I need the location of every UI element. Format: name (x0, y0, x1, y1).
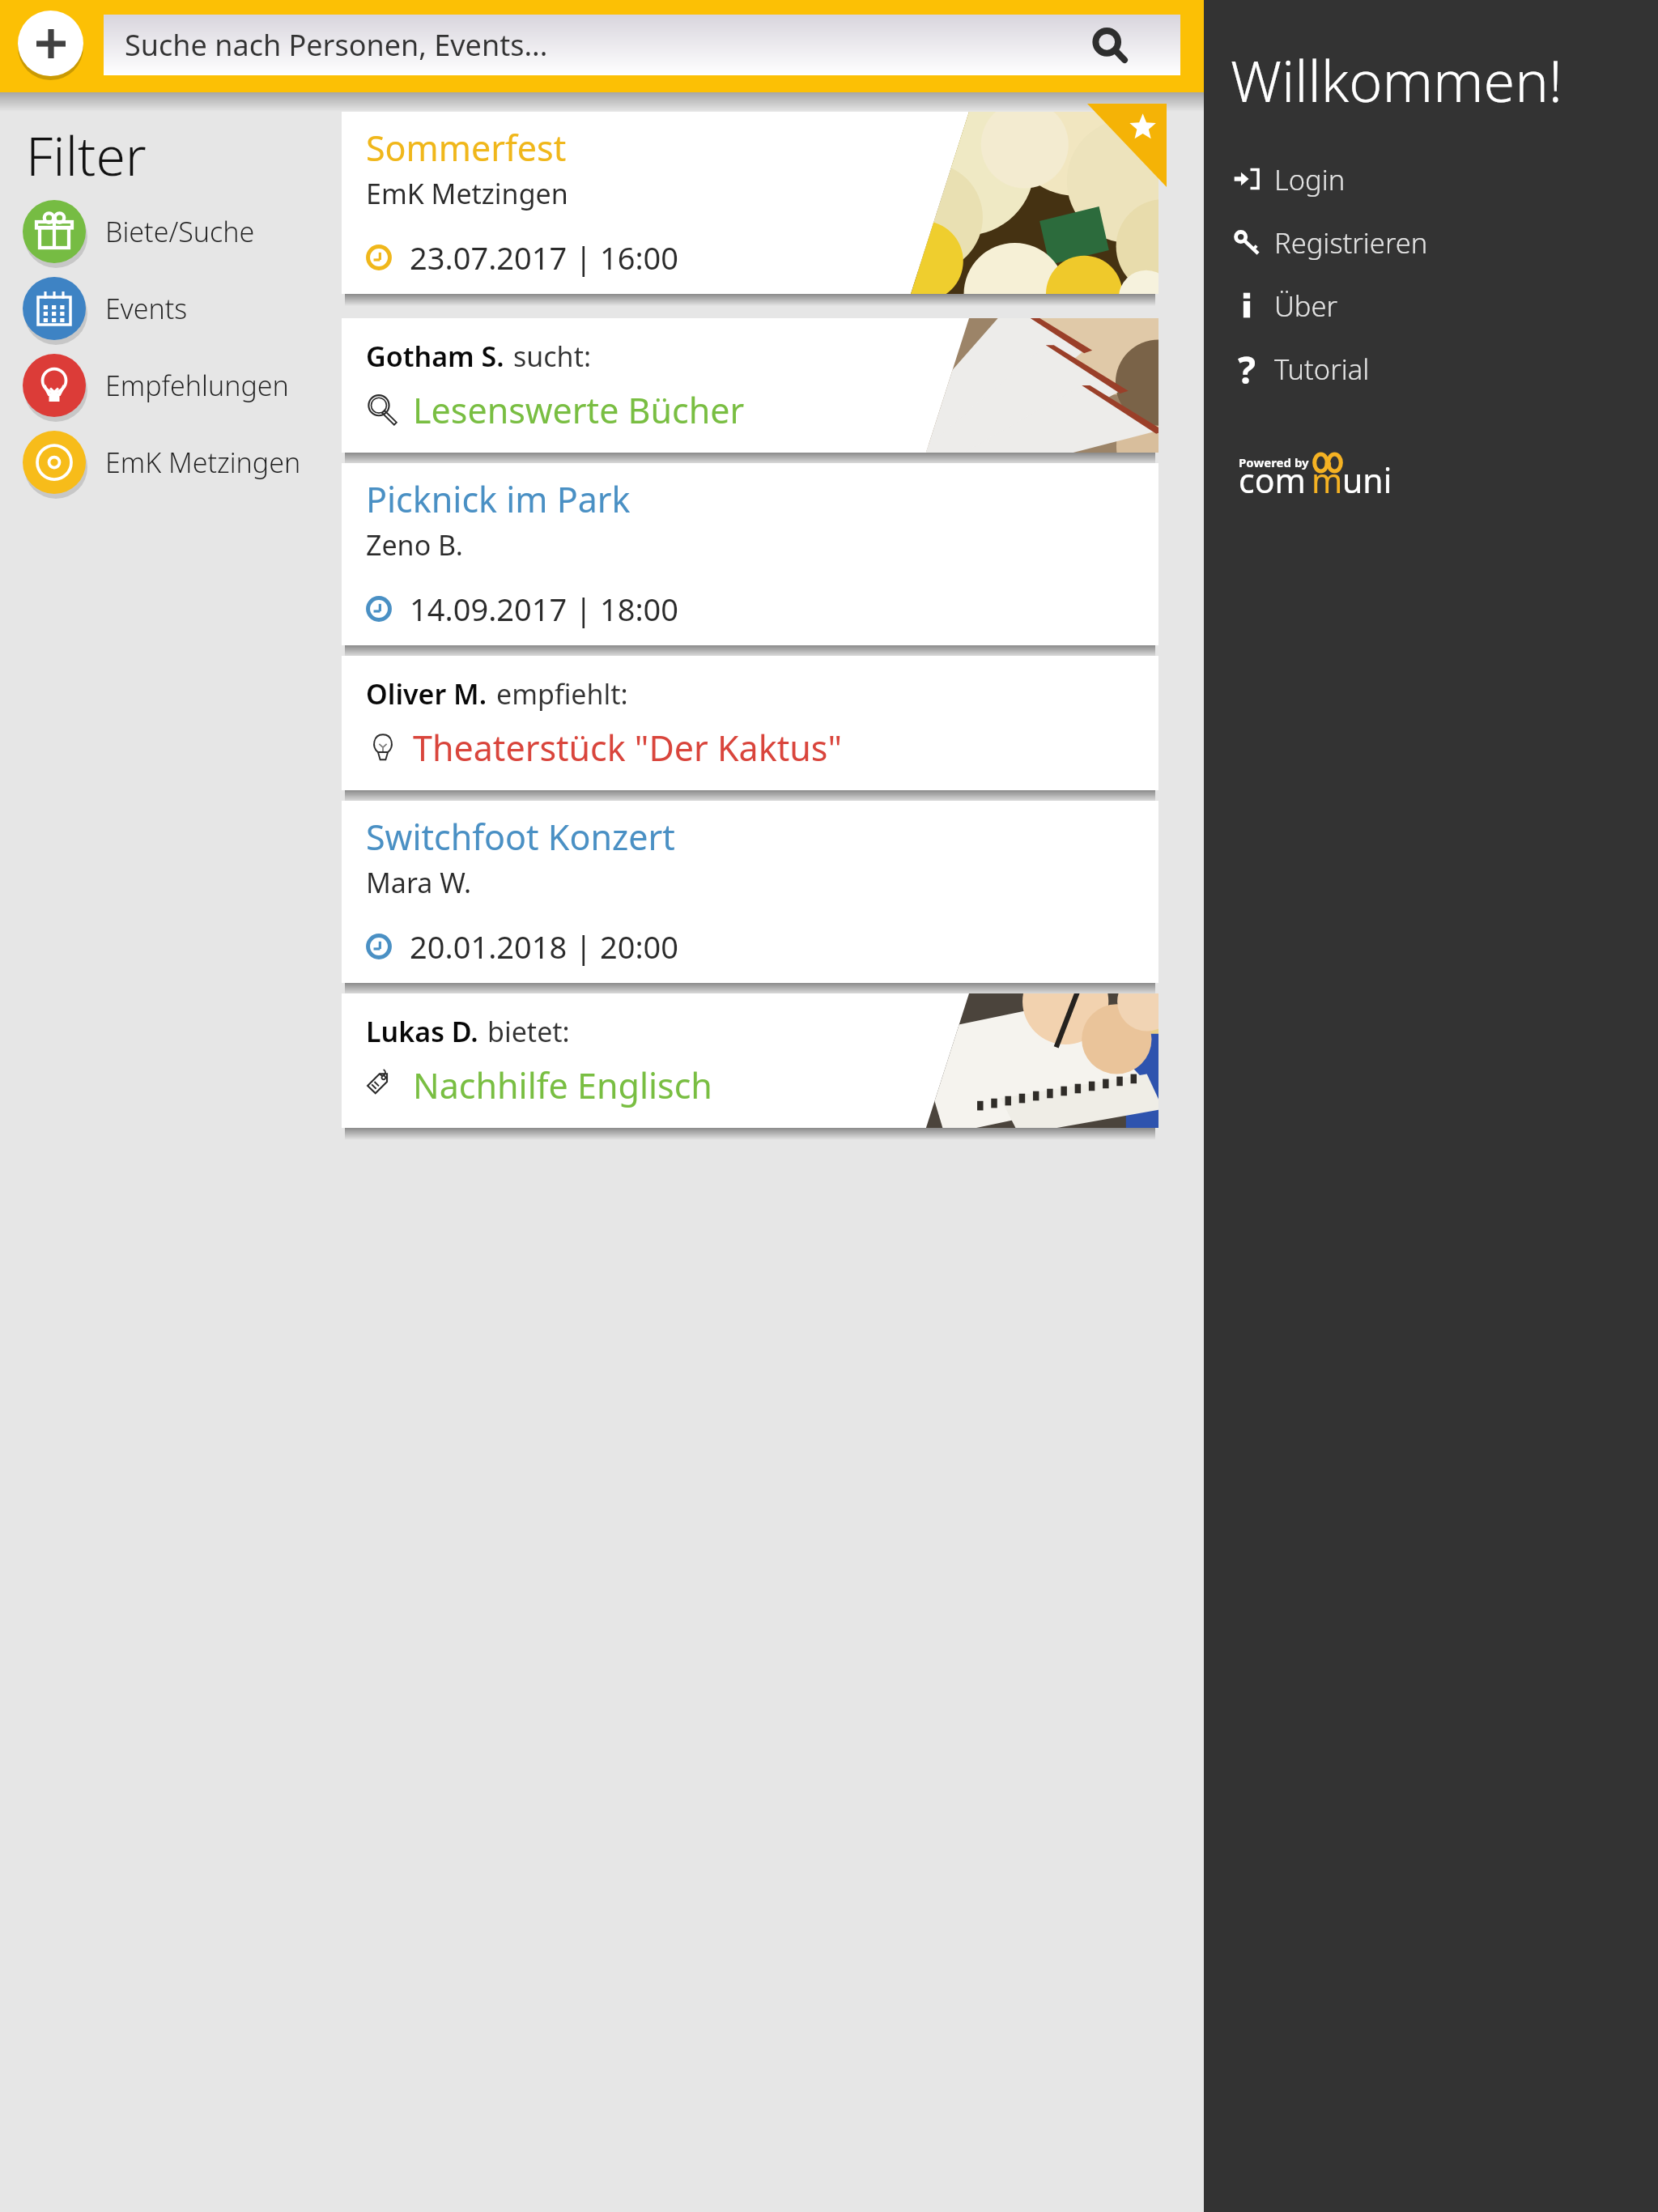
button[interactable]: Lukas D. (342, 993, 1158, 1128)
staticText: 23.07.2017 | 16:00 (410, 236, 679, 279)
button[interactable]: Switchfoot Konzert (342, 801, 1158, 983)
staticText: Powered by (1239, 454, 1309, 470)
button[interactable]: Registrieren (1204, 211, 1658, 274)
button[interactable]: Empfehlungen (0, 347, 342, 423)
button[interactable]: Biete/Suche (0, 193, 342, 270)
staticText: Events (105, 290, 188, 327)
staticText: sucht: (513, 338, 592, 375)
button[interactable]: Über (1204, 274, 1658, 337)
staticText: Tutorial (1274, 350, 1370, 388)
button[interactable]: Oliver M. (342, 656, 1158, 790)
staticText: Oliver M. (366, 675, 487, 713)
staticText: ? (1238, 344, 1256, 386)
button[interactable]: EmK Metzingen (0, 423, 342, 500)
staticText: Registrieren (1274, 223, 1428, 262)
button[interactable]: Login (1204, 147, 1658, 211)
staticText: Lesenswerte Bücher (413, 386, 745, 434)
staticText: uni (1342, 457, 1392, 503)
button[interactable]: Sommerfest (342, 112, 1158, 294)
staticText: Willkommen! (1231, 41, 1563, 118)
staticText: bietet: (487, 1013, 570, 1050)
staticText: EmK Metzingen (366, 175, 568, 212)
button[interactable]: Neu erstellen (18, 11, 83, 76)
button[interactable]: Gotham S. (342, 318, 1158, 453)
staticText: Theaterstück "Der Kaktus" (413, 724, 842, 772)
staticText: Login (1274, 160, 1346, 198)
button[interactable]: Events (0, 270, 342, 347)
staticText: m (1312, 457, 1343, 503)
staticText: EmK Metzingen (105, 444, 301, 481)
staticText: Lukas D. (366, 1013, 478, 1050)
staticText: Sommerfest (366, 124, 567, 172)
button[interactable]: Suche nach Personen, Events... (104, 15, 1180, 75)
staticText: Über (1274, 287, 1338, 325)
staticText: Picknick im Park (366, 475, 631, 523)
button[interactable]: Suchen (1082, 16, 1140, 74)
staticText: Nachhilfe Englisch (413, 1061, 712, 1109)
button[interactable]: ? (1204, 337, 1658, 400)
staticText: Switchfoot Konzert (366, 813, 675, 861)
button[interactable]: Picknick im Park (342, 463, 1158, 645)
staticText: Empfehlungen (105, 367, 289, 404)
staticText: Filter (26, 118, 147, 191)
staticText: Gotham S. (366, 338, 504, 375)
staticText: Zeno B. (366, 526, 463, 564)
staticText: 14.09.2017 | 18:00 (410, 588, 679, 630)
staticText: 20.01.2018 | 20:00 (410, 925, 679, 968)
staticText: Biete/Suche (105, 213, 255, 250)
staticText: com (1239, 457, 1306, 503)
staticText: Suche nach Personen, Events... (125, 25, 548, 65)
staticText: Mara W. (366, 864, 472, 901)
staticText: empfiehlt: (496, 675, 628, 713)
